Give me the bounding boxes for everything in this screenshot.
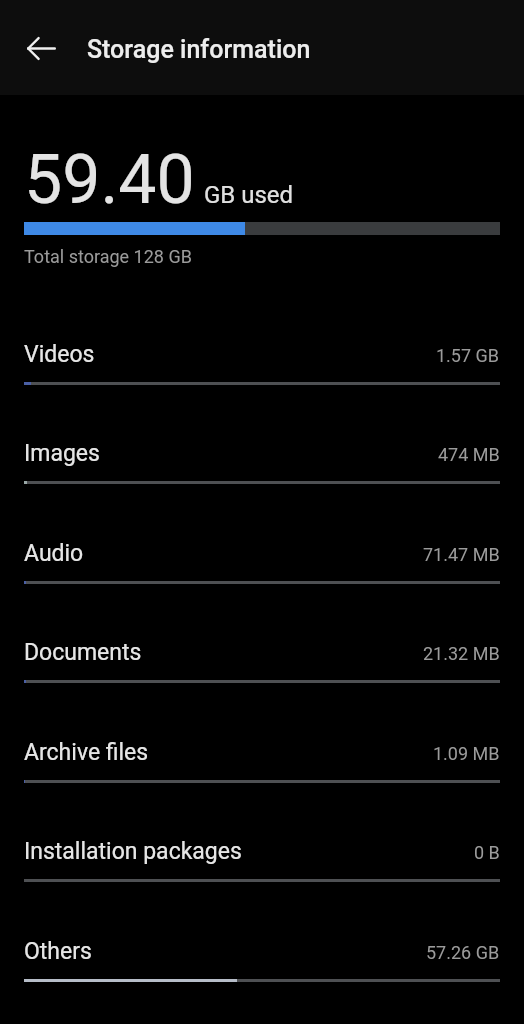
staticText: Videos <box>24 341 95 368</box>
staticText: Total storage 128 GB <box>24 246 192 267</box>
button[interactable]: Images <box>0 431 524 531</box>
button[interactable]: Installation packages <box>0 829 524 929</box>
staticText: Installation packages <box>24 838 242 865</box>
staticText: 21.32 MB <box>423 643 500 664</box>
staticText: 59.40 <box>24 140 195 220</box>
button[interactable] <box>17 23 66 72</box>
staticText: Storage information <box>87 35 311 64</box>
staticText: Audio <box>24 540 84 567</box>
staticText: Documents <box>24 639 142 666</box>
staticText: Others <box>24 938 92 965</box>
staticText: 474 MB <box>438 444 500 465</box>
button[interactable]: Archive files <box>0 730 524 830</box>
staticText: 1.09 MB <box>433 743 500 764</box>
staticText: GB used <box>204 181 294 209</box>
staticText: 71.47 MB <box>423 544 500 565</box>
staticText: 1.57 GB <box>436 345 500 366</box>
staticText: 57.26 GB <box>426 942 500 963</box>
staticText: Images <box>24 440 100 467</box>
button[interactable]: Videos <box>0 332 524 432</box>
staticText: Archive files <box>24 739 149 766</box>
button[interactable]: Audio <box>0 531 524 631</box>
button[interactable]: Documents <box>0 630 524 730</box>
staticText: 0 B <box>474 842 500 863</box>
button[interactable]: Others <box>0 929 524 1024</box>
